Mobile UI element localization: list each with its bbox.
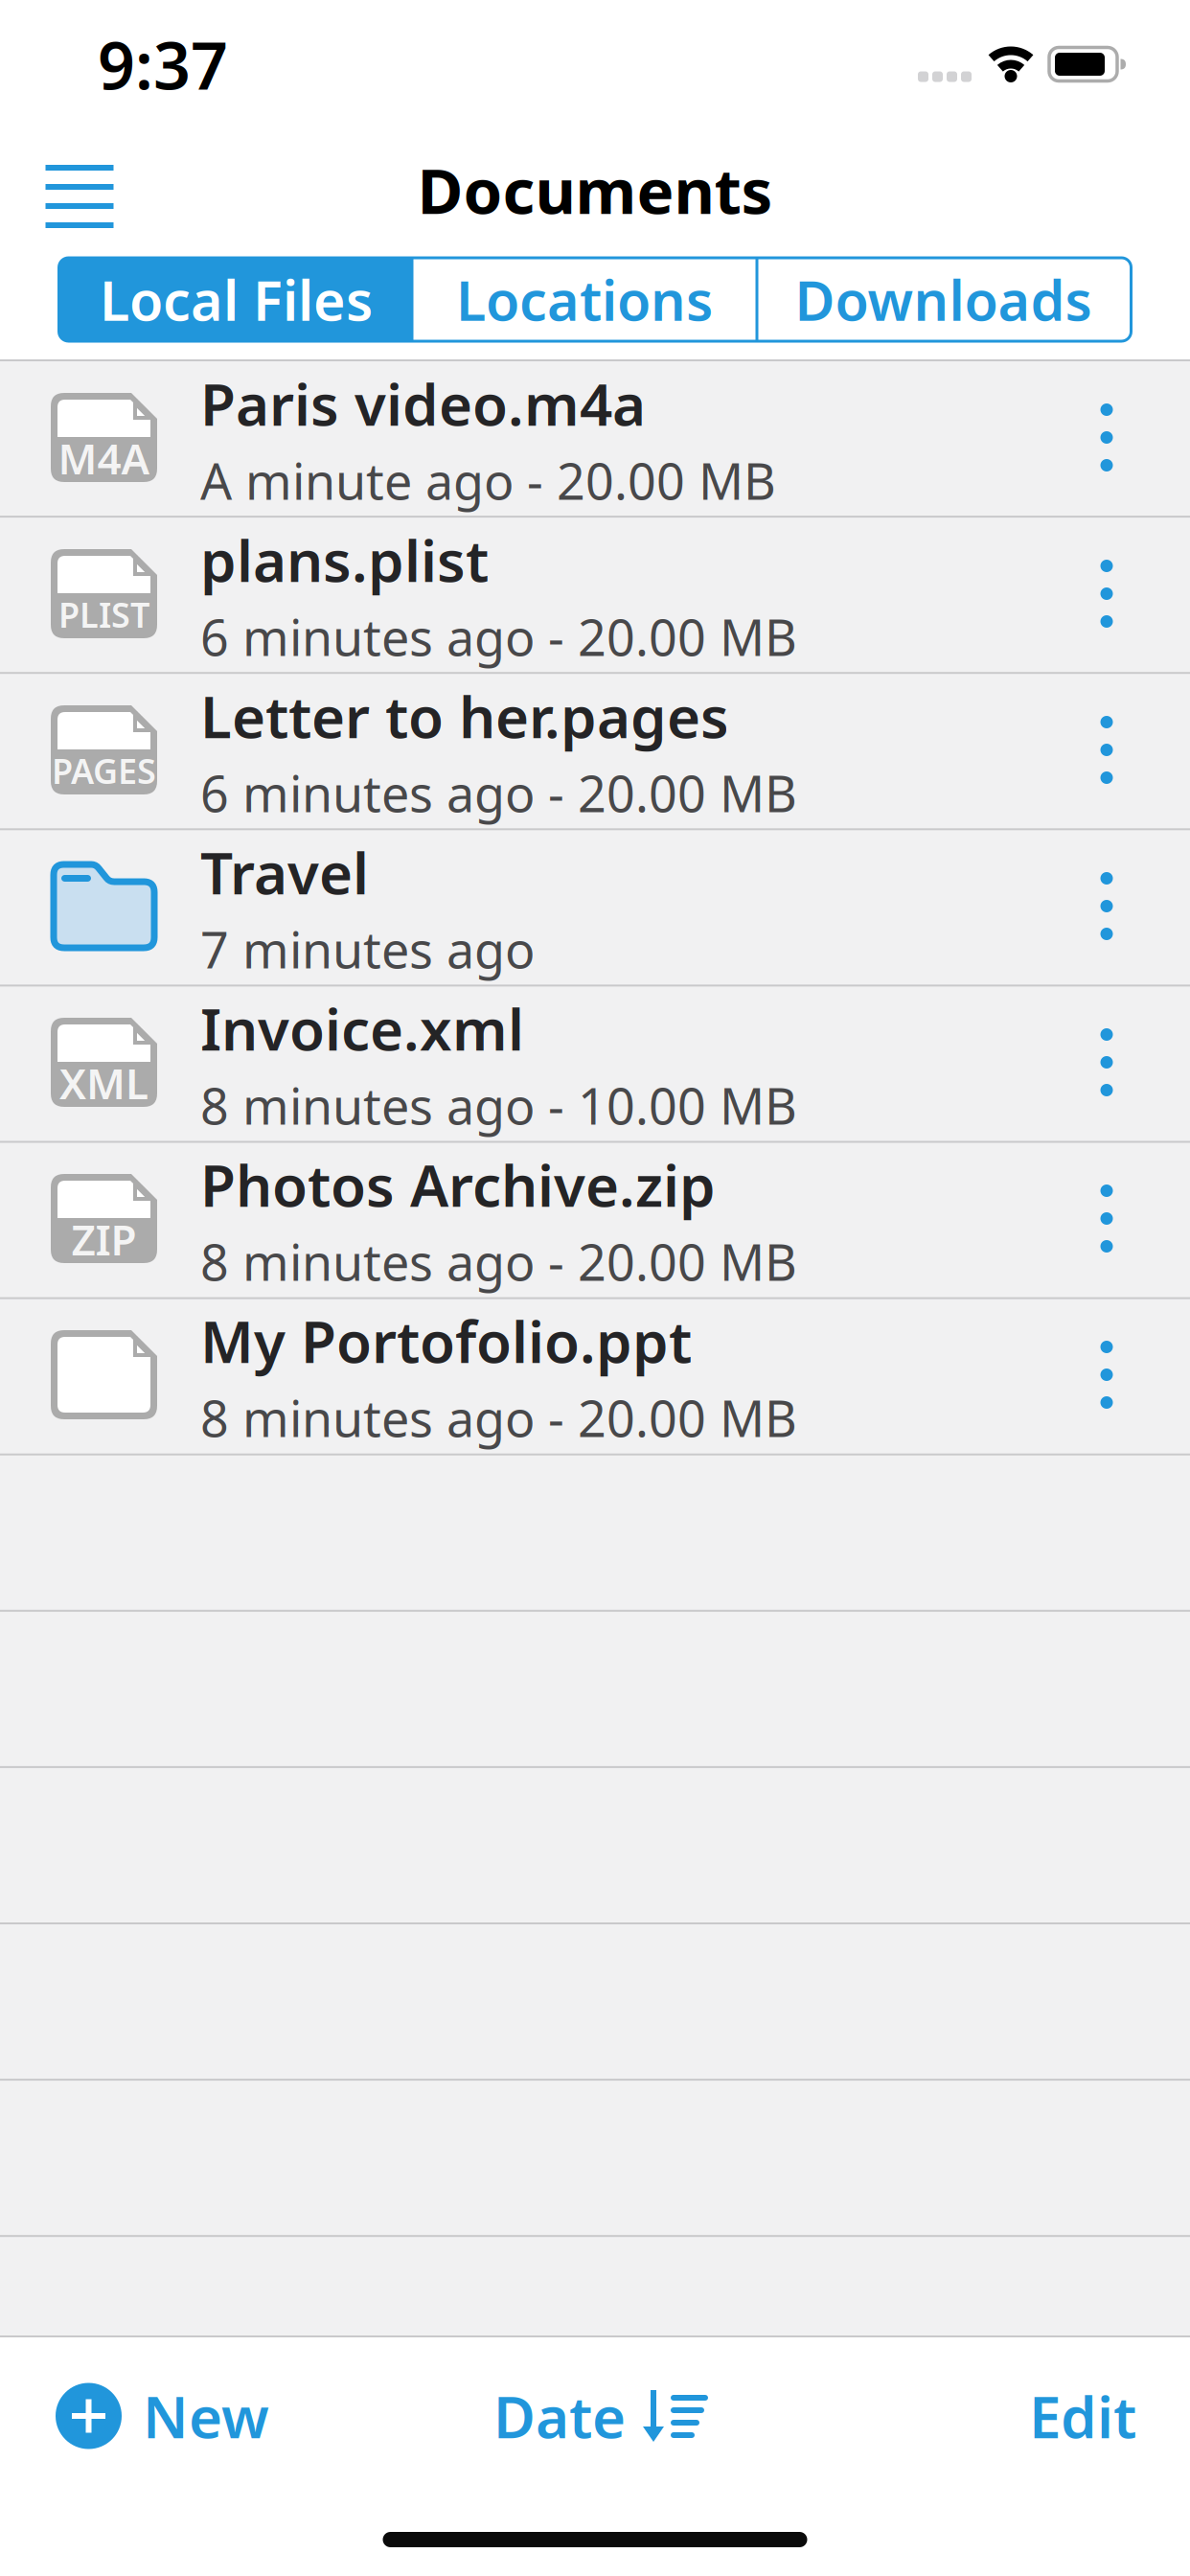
staticText: 9:37	[98, 21, 228, 107]
button[interactable]: More actions	[1068, 692, 1145, 807]
staticText: Photos Archive.zip	[200, 1146, 716, 1223]
staticText: 8 minutes ago - 20.00 MB	[200, 1228, 797, 1295]
button[interactable]: Menu	[32, 149, 127, 244]
staticText: A minute ago - 20.00 MB	[200, 447, 776, 514]
staticText: XML	[59, 1055, 149, 1111]
button[interactable]: More actions	[1068, 380, 1145, 495]
button[interactable]: Travel	[0, 828, 1190, 984]
button[interactable]: Downloads	[59, 258, 435, 341]
button[interactable]: My Portofolio.ppt	[0, 1297, 1190, 1453]
staticText: 8 minutes ago - 20.00 MB	[200, 1385, 797, 1451]
staticText: plans.plist	[200, 521, 489, 598]
staticText: Edit	[1029, 2378, 1136, 2454]
staticText: Letter to her.pages	[200, 678, 729, 754]
staticText: New	[143, 2378, 269, 2454]
button[interactable]: Edit	[1006, 2368, 1159, 2464]
button[interactable]: PLIST	[0, 516, 1190, 672]
button[interactable]: ZIP	[0, 1140, 1190, 1297]
button[interactable]: Date	[493, 2368, 708, 2464]
button[interactable]: More actions	[1068, 1005, 1145, 1120]
button[interactable]: New	[56, 2368, 324, 2464]
button[interactable]: More actions	[1068, 1161, 1145, 1276]
button[interactable]: M4A	[0, 359, 1190, 516]
staticText: 8 minutes ago - 10.00 MB	[200, 1072, 797, 1138]
staticText: Downloads	[795, 263, 1092, 336]
button[interactable]: PAGES	[0, 672, 1190, 828]
staticText: Documents	[417, 148, 773, 231]
staticText: Local Files	[100, 263, 373, 336]
button[interactable]: More actions	[1068, 536, 1145, 651]
staticText: Travel	[200, 834, 369, 910]
button[interactable]: Local Files	[59, 258, 413, 341]
staticText: My Portofolio.ppt	[200, 1302, 692, 1379]
button[interactable]: XML	[0, 984, 1190, 1140]
staticText: PAGES	[52, 748, 156, 793]
staticText: 7 minutes ago	[200, 916, 535, 982]
button[interactable]: Locations	[59, 258, 401, 341]
staticText: Locations	[456, 263, 713, 336]
button[interactable]: More actions	[1068, 849, 1145, 964]
staticText: Paris video.m4a	[200, 365, 646, 442]
staticText: Date	[493, 2378, 626, 2454]
staticText: 6 minutes ago - 20.00 MB	[200, 760, 797, 826]
staticText: Invoice.xml	[200, 990, 524, 1066]
button[interactable]: More actions	[1068, 1317, 1145, 1432]
staticText: ZIP	[71, 1211, 137, 1267]
staticText: 6 minutes ago - 20.00 MB	[200, 604, 797, 670]
staticText: PLIST	[58, 591, 149, 637]
staticText: M4A	[58, 430, 150, 486]
